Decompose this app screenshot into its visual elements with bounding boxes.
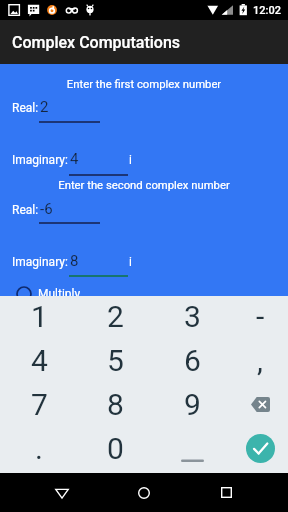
staticText: 5 [107,343,124,378]
button[interactable]: 9 [157,382,227,426]
staticText: 7 [31,387,48,422]
staticText: -6 [40,200,53,218]
button[interactable]: 3 [157,294,227,338]
staticText: . [35,431,43,466]
staticText: 8 [70,252,79,270]
staticText: 4 [31,343,48,378]
staticText: Enter the second complex number [0,179,288,192]
staticText: , [257,343,263,378]
staticText: 2 [40,98,49,116]
staticText: 4 [70,150,79,168]
button[interactable]: Imaginary: [0,150,288,172]
button[interactable]: 2 [80,294,150,338]
button[interactable]: Recents [206,473,246,512]
button[interactable]: - [225,294,288,338]
button[interactable]: Space [157,426,227,470]
button[interactable]: Backspace [225,382,288,426]
staticText: Imaginary: [12,255,68,269]
staticText: - [256,299,265,334]
staticText: i [129,255,132,269]
button[interactable]: Imaginary: [0,252,288,274]
staticText: 6 [184,343,201,378]
button[interactable]: Home [124,473,164,512]
staticText: 3 [184,299,201,334]
button[interactable]: 5 [80,338,150,382]
button[interactable]: Multiply [14,285,134,309]
button[interactable]: Real: [0,200,288,222]
button[interactable]: 8 [80,382,150,426]
staticText: Complex Computations [12,33,181,52]
button[interactable]: 0 [80,426,150,470]
staticText: Real: [12,203,39,217]
staticText: i [129,153,132,167]
staticText: Imaginary: [12,153,68,167]
staticText: Multiply [38,287,81,301]
staticText: 2 [107,299,124,334]
staticText: Enter the first complex number [0,78,288,91]
button[interactable]: Complex Computations [0,20,288,64]
staticText: 9 [184,387,201,422]
staticText: 12:02 [253,4,281,17]
button[interactable]: . [4,426,74,470]
staticText: 0 [107,431,124,466]
staticText: 8 [107,387,124,422]
button[interactable]: Real: [0,98,288,120]
button[interactable]: , [225,338,288,382]
button[interactable]: 4 [4,338,74,382]
button[interactable]: Back [42,473,82,512]
staticText: 1 [31,299,48,334]
staticText: Real: [12,101,39,115]
button[interactable]: 7 [4,382,74,426]
button[interactable]: 1 [4,294,74,338]
button[interactable]: Enter [225,426,288,470]
button[interactable]: 6 [157,338,227,382]
